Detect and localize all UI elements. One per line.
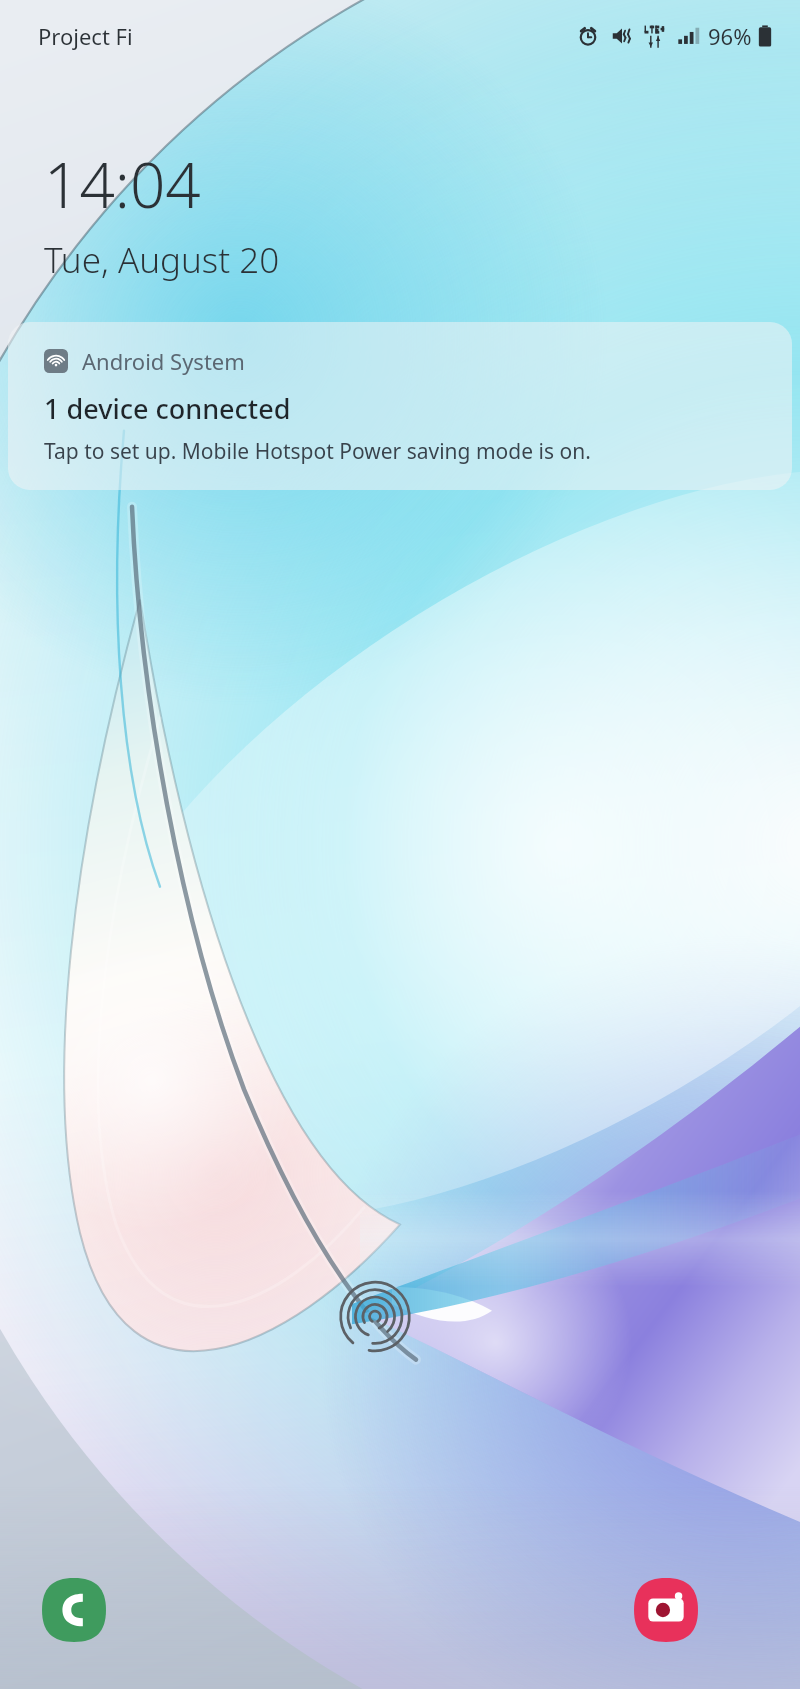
button[interactable]: Android System (8, 322, 792, 490)
button[interactable]: Camera (632, 1576, 700, 1644)
staticText: Android System (82, 346, 245, 376)
staticText: 96% (708, 21, 752, 51)
staticText: Tue, August 20 (44, 236, 280, 284)
button[interactable]: Fingerprint unlock (336, 1276, 414, 1354)
staticText: 14:04 (44, 142, 201, 226)
staticText: Tap to set up. Mobile Hotspot Power savi… (44, 437, 591, 466)
staticText: 1 device connected (44, 390, 291, 427)
button[interactable]: Phone (40, 1576, 108, 1644)
staticText: Project Fi (38, 21, 133, 51)
